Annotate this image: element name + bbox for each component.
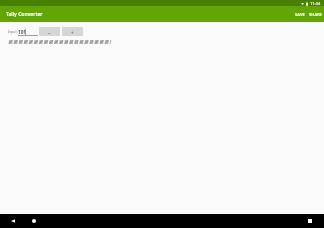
button[interactable]: SAVE (293, 9, 307, 21)
staticText: SHARE (309, 12, 323, 18)
button[interactable]: + (62, 27, 83, 36)
button[interactable]: – (39, 27, 60, 36)
button[interactable]: Home (32, 219, 36, 223)
staticText: SAVE (295, 12, 305, 18)
button[interactable]: Back (11, 219, 15, 223)
staticText: 101 (18, 29, 26, 35)
staticText: + (71, 30, 74, 36)
staticText: – (48, 30, 51, 36)
staticText: Tally Converter (6, 11, 43, 18)
staticText: 11:34 (310, 1, 321, 6)
button[interactable]: SHARE (307, 9, 324, 21)
button[interactable]: Input number (18, 28, 38, 36)
staticText: Input (8, 29, 17, 34)
